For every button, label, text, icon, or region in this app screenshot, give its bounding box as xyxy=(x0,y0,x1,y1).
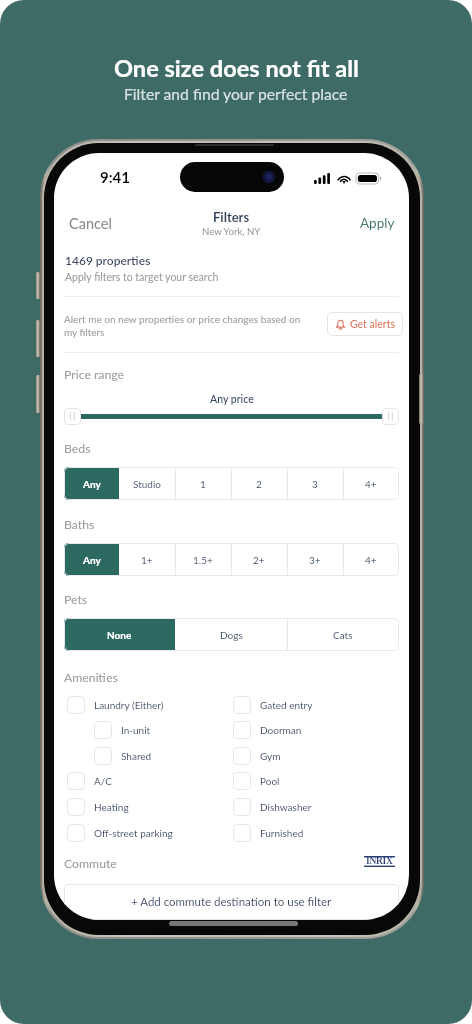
staticText: Gated entry xyxy=(260,699,313,711)
button[interactable]: Gym xyxy=(233,745,281,767)
staticText: 1+ xyxy=(141,554,153,566)
button[interactable]: Off-street parking xyxy=(67,822,173,844)
staticText: Laundry (Either) xyxy=(94,699,164,711)
staticText: 2 xyxy=(256,478,262,490)
staticText: INRIX xyxy=(366,856,393,867)
button[interactable]: 1.5+ xyxy=(175,543,231,576)
staticText: Cancel xyxy=(69,215,112,232)
button[interactable]: 3+ xyxy=(287,543,343,576)
staticText: 1469 properties xyxy=(65,253,151,267)
staticText: Doorman xyxy=(260,724,302,736)
staticText: Commute xyxy=(64,856,117,871)
staticText: 1.5+ xyxy=(193,554,213,566)
button[interactable]: Furnished xyxy=(233,822,304,844)
button[interactable]: A/C xyxy=(67,770,112,792)
staticText: Any xyxy=(83,478,101,490)
staticText: 3+ xyxy=(309,554,321,566)
button[interactable]: Any xyxy=(64,543,119,576)
button[interactable]: + Add commute destination to use filter xyxy=(64,884,399,920)
staticText: Baths xyxy=(64,517,95,532)
staticText: Get alerts xyxy=(350,318,395,331)
staticText: Any price xyxy=(210,393,254,406)
staticText: 4+ xyxy=(365,554,377,566)
staticText: Pool xyxy=(260,775,280,787)
staticText: Pets xyxy=(64,592,88,607)
button[interactable]: Cats xyxy=(287,618,399,651)
staticText: Off-street parking xyxy=(94,827,173,839)
button[interactable]: Price range handle xyxy=(382,408,399,425)
staticText: Shared xyxy=(121,750,152,762)
button[interactable]: Cancel xyxy=(69,215,112,232)
button[interactable]: In-unit xyxy=(94,719,151,741)
staticText: 1 xyxy=(200,478,206,490)
staticText: Amenities xyxy=(64,670,118,685)
staticText: Any xyxy=(83,554,101,566)
staticText: 3 xyxy=(312,478,318,490)
staticText: Alert me on new properties or price chan… xyxy=(64,313,314,338)
staticText: Filter and find your perfect place xyxy=(124,85,348,104)
button[interactable]: Dogs xyxy=(175,618,287,651)
button[interactable]: Studio xyxy=(119,467,175,500)
staticText: Studio xyxy=(133,478,162,490)
staticText: Heating xyxy=(94,801,129,813)
staticText: In-unit xyxy=(121,724,151,736)
staticText: 2+ xyxy=(253,554,265,566)
staticText: Furnished xyxy=(260,827,304,839)
staticText: A/C xyxy=(94,775,112,787)
staticText: Filters xyxy=(213,209,250,225)
staticText: One size does not fit all xyxy=(114,54,359,82)
button[interactable]: Dishwasher xyxy=(233,796,312,818)
button[interactable]: Apply xyxy=(360,215,395,231)
button[interactable]: 1+ xyxy=(119,543,175,576)
button[interactable]: Pool xyxy=(233,770,280,792)
staticText: + Add commute destination to use filter xyxy=(131,895,332,909)
staticText: Beds xyxy=(64,441,91,456)
button[interactable]: Get alerts xyxy=(327,312,403,336)
button[interactable]: 4+ xyxy=(343,467,399,500)
staticText: Cats xyxy=(333,629,353,641)
staticText: None xyxy=(107,629,132,641)
staticText: Dishwasher xyxy=(260,801,312,813)
button[interactable]: Gated entry xyxy=(233,694,313,716)
button[interactable]: Laundry (Either) xyxy=(67,694,164,716)
button[interactable]: Shared xyxy=(94,745,152,767)
staticText: New York, NY xyxy=(202,226,261,238)
staticText: Gym xyxy=(260,750,281,762)
button[interactable]: Doorman xyxy=(233,719,302,741)
button[interactable]: 4+ xyxy=(343,543,399,576)
button[interactable]: Heating xyxy=(67,796,129,818)
button[interactable]: Any xyxy=(64,467,119,500)
button[interactable]: 2+ xyxy=(231,543,287,576)
button[interactable]: None xyxy=(64,618,175,651)
button[interactable]: 1 xyxy=(175,467,231,500)
button[interactable]: 3 xyxy=(287,467,343,500)
staticText: Dogs xyxy=(220,629,243,641)
staticText: 9:41 xyxy=(100,168,130,186)
staticText: 4+ xyxy=(365,478,377,490)
staticText: Apply xyxy=(360,215,395,231)
button[interactable]: 2 xyxy=(231,467,287,500)
staticText: Price range xyxy=(64,367,125,382)
staticText: Apply filters to target your search xyxy=(65,271,219,284)
button[interactable]: Price range handle xyxy=(64,408,81,425)
